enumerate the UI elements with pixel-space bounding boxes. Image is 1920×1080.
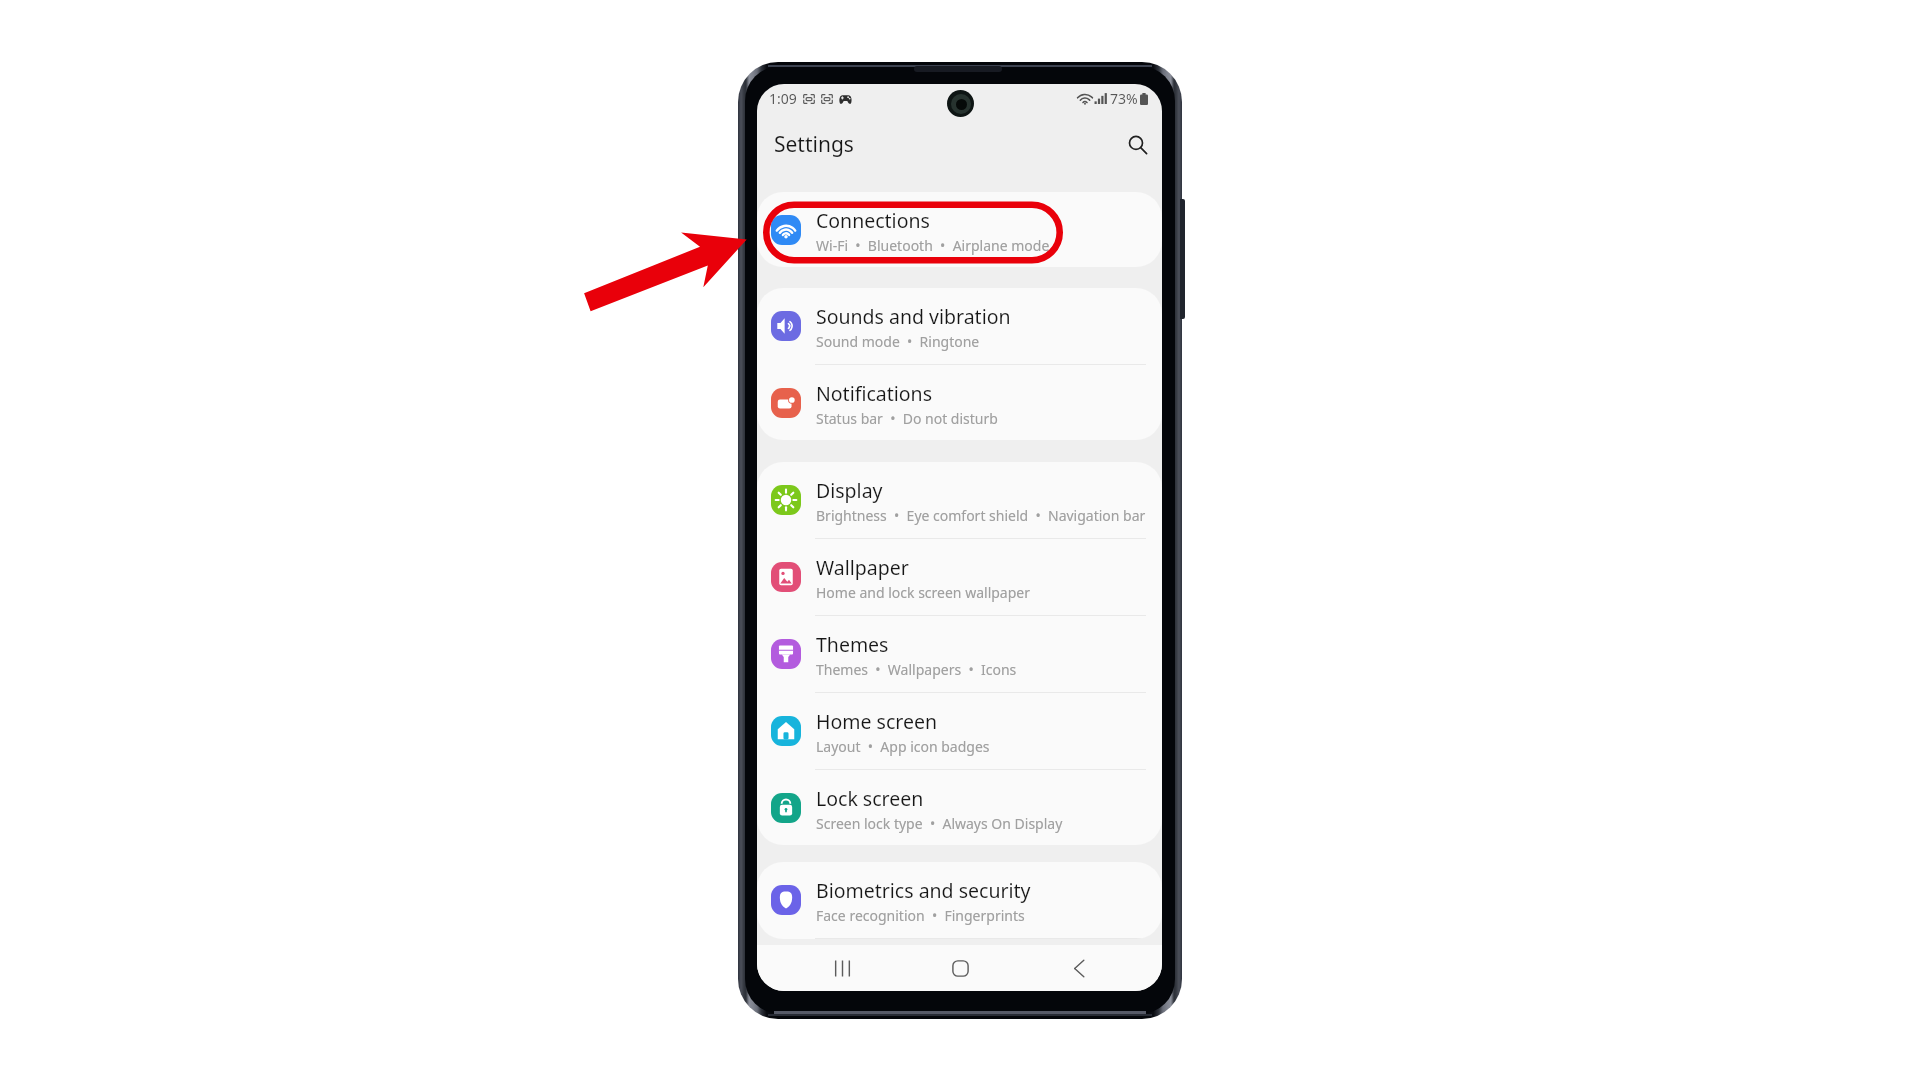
staticText: Lock screen	[816, 785, 924, 812]
staticText: Layout • App icon badges	[816, 737, 990, 756]
button[interactable]: Wallpaper	[757, 539, 1162, 616]
button[interactable]: Lock screen	[757, 770, 1162, 845]
staticText: Connections	[816, 207, 930, 234]
button[interactable]: Home screen	[757, 693, 1162, 770]
button[interactable]: Notifications	[757, 365, 1162, 440]
staticText: 73%	[1110, 89, 1138, 108]
staticText: Themes • Wallpapers • Icons	[816, 660, 1017, 679]
button[interactable]: Search	[1118, 125, 1158, 165]
staticText: Settings	[774, 130, 854, 159]
button[interactable]: Connections	[757, 192, 1162, 267]
staticText: Wi-Fi • Bluetooth • Airplane mode	[816, 236, 1050, 255]
staticText: Display	[816, 477, 883, 504]
staticText: Biometrics and security	[816, 877, 1031, 904]
button[interactable]: Biometrics and security	[757, 862, 1162, 939]
button[interactable]: Display	[757, 462, 1162, 539]
button[interactable]: Home	[937, 945, 983, 991]
staticText: Screen lock type • Always On Display	[816, 814, 1063, 833]
button[interactable]: Back	[1055, 945, 1101, 991]
button[interactable]: Recents	[819, 945, 865, 991]
staticText: Themes	[816, 631, 889, 658]
staticText: Brightness • Eye comfort shield • Naviga…	[816, 506, 1146, 525]
staticText: Wallpaper	[816, 554, 909, 581]
staticText: Status bar • Do not disturb	[816, 409, 998, 428]
button[interactable]: Themes	[757, 616, 1162, 693]
staticText: Notifications	[816, 380, 932, 407]
staticText: Sound mode • Ringtone	[816, 332, 980, 351]
staticText: Home screen	[816, 708, 937, 735]
staticText: Sounds and vibration	[816, 303, 1011, 330]
staticText: Home and lock screen wallpaper	[816, 583, 1030, 602]
button[interactable]: Sounds and vibration	[757, 288, 1162, 365]
staticText: Face recognition • Fingerprints	[816, 906, 1025, 925]
staticText: 1:09	[769, 89, 797, 108]
